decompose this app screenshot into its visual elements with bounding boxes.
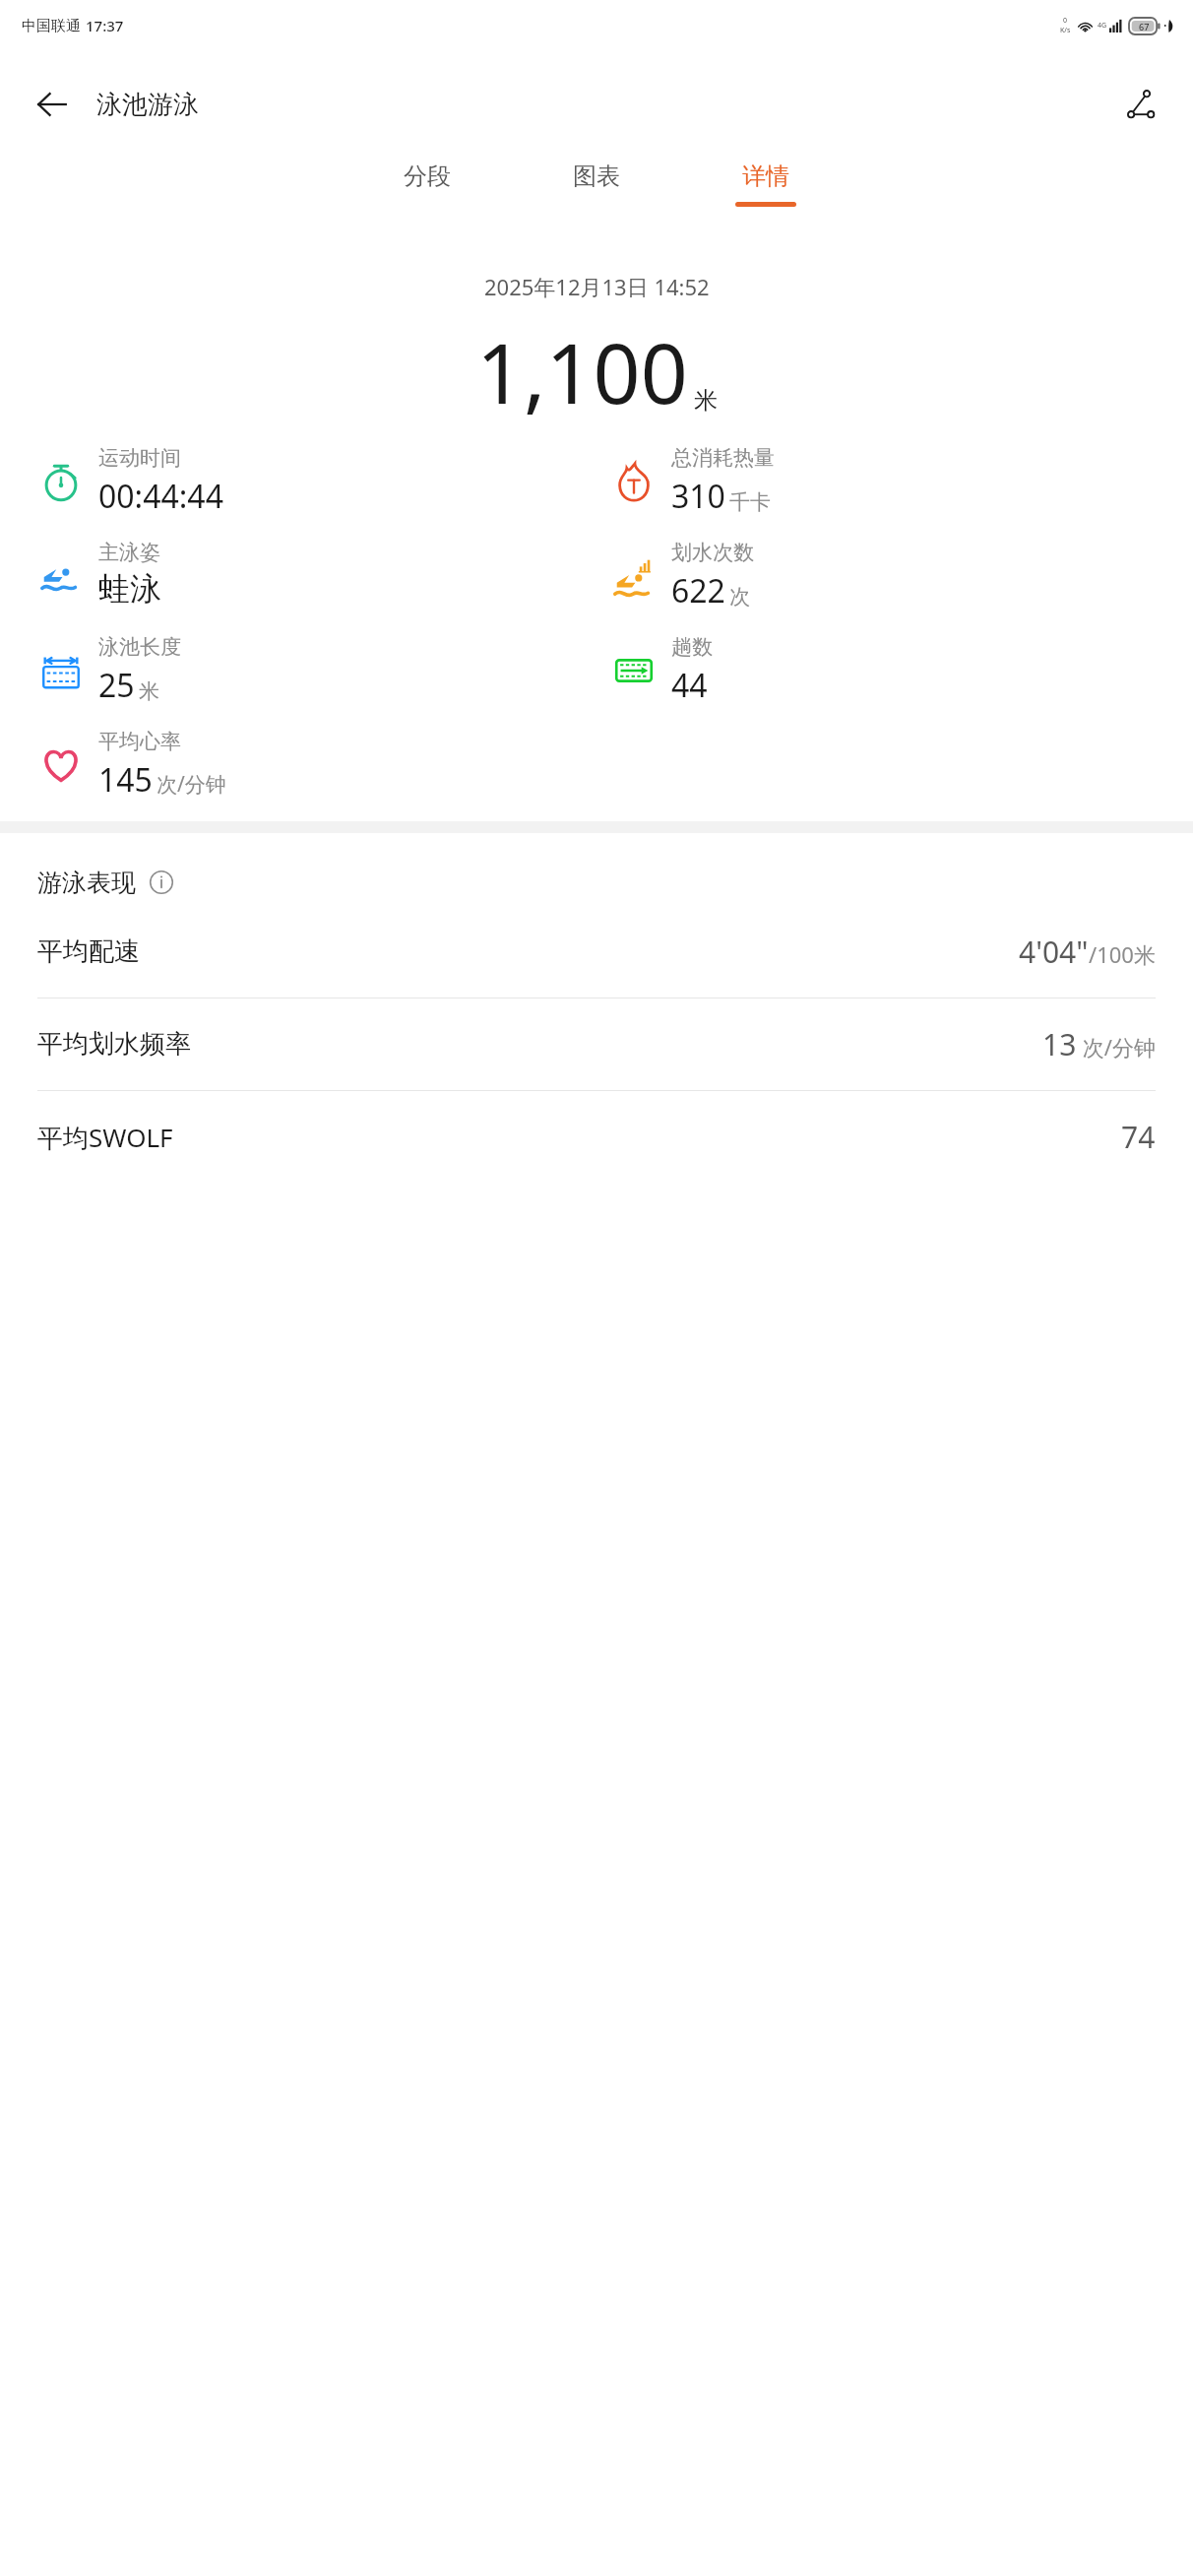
- button[interactable]: Info: [146, 867, 177, 898]
- staticText: 蛙泳: [98, 569, 161, 609]
- staticText: 25: [98, 664, 135, 707]
- button[interactable]: 图表: [537, 158, 656, 206]
- staticText: 米: [139, 678, 159, 704]
- staticText: 平均心率: [98, 729, 181, 754]
- button[interactable]: 分段: [368, 158, 486, 206]
- staticText: 详情: [742, 161, 789, 191]
- staticText: 平均SWOLF: [37, 1120, 173, 1155]
- staticText: 次/分钟: [157, 770, 226, 799]
- staticText: 趟数: [671, 634, 713, 660]
- staticText: 4'04": [1019, 932, 1089, 972]
- staticText: 图表: [573, 161, 620, 191]
- staticText: 分段: [404, 161, 451, 191]
- staticText: 0: [1063, 16, 1068, 26]
- button[interactable]: 平均配速: [0, 906, 1193, 998]
- staticText: 4G: [1098, 21, 1107, 31]
- button[interactable]: 详情: [707, 158, 825, 211]
- button[interactable]: Back: [24, 76, 81, 133]
- staticText: 145: [98, 758, 153, 802]
- button[interactable]: 平均SWOLF: [0, 1091, 1193, 1183]
- staticText: 千卡: [729, 489, 771, 515]
- staticText: 2025年12月13日 14:52: [484, 272, 710, 301]
- staticText: 游泳表现: [37, 868, 136, 898]
- staticText: 泳池长度: [98, 634, 181, 660]
- staticText: 平均划水频率: [37, 1028, 191, 1061]
- staticText: 67: [1139, 21, 1150, 32]
- staticText: 主泳姿: [98, 540, 160, 565]
- staticText: 1,100: [476, 315, 688, 427]
- staticText: 运动时间: [98, 445, 181, 471]
- staticText: 泳池游泳: [96, 89, 199, 121]
- staticText: 划水次数: [671, 540, 754, 565]
- staticText: 总消耗热量: [671, 445, 775, 471]
- staticText: 622: [671, 569, 725, 612]
- staticText: 00:44:44: [98, 475, 223, 518]
- staticText: 17:37: [86, 16, 124, 35]
- button[interactable]: Share: [1112, 76, 1169, 133]
- staticText: K/s: [1060, 26, 1071, 35]
- staticText: 310: [671, 475, 725, 518]
- staticText: 次: [729, 584, 750, 610]
- staticText: 中国联通: [22, 17, 81, 35]
- staticText: 次/分钟: [1077, 1032, 1156, 1062]
- staticText: 13: [1042, 1024, 1077, 1064]
- staticText: /100米: [1089, 939, 1156, 969]
- staticText: 44: [671, 664, 708, 707]
- staticText: 米: [694, 386, 718, 416]
- staticText: 74: [1121, 1117, 1156, 1157]
- button[interactable]: 平均划水频率: [0, 998, 1193, 1091]
- staticText: 平均配速: [37, 935, 140, 968]
